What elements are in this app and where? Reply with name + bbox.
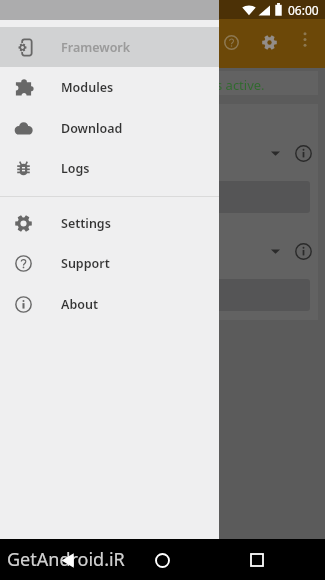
staticText: Xposed framework version 90.1 is active. [17, 76, 265, 94]
button[interactable]: Framework [0, 27, 219, 67]
button[interactable]: Modules [0, 67, 219, 107]
staticText: 06:00 [288, 2, 319, 18]
staticText: Download [61, 120, 123, 137]
staticText: Modules [61, 79, 114, 96]
button[interactable]: Settings [251, 24, 287, 60]
button[interactable]: Back [53, 546, 81, 574]
button[interactable]: More options [290, 24, 320, 54]
button[interactable]: Help [213, 24, 249, 60]
staticText: Framework [61, 39, 131, 56]
button[interactable]: Settings [0, 203, 219, 243]
button[interactable]: Home [148, 546, 176, 574]
staticText: Settings [61, 215, 111, 232]
staticText: Logs [61, 160, 90, 177]
staticText: Support [61, 255, 110, 272]
button[interactable]: Support [0, 243, 219, 283]
button[interactable]: Download [0, 108, 219, 148]
staticText: About [61, 296, 98, 313]
button[interactable]: Recents [243, 546, 271, 574]
button[interactable]: Logs [0, 148, 219, 188]
staticText: GetAndroid.iR [7, 547, 125, 572]
button[interactable]: About [0, 284, 219, 324]
